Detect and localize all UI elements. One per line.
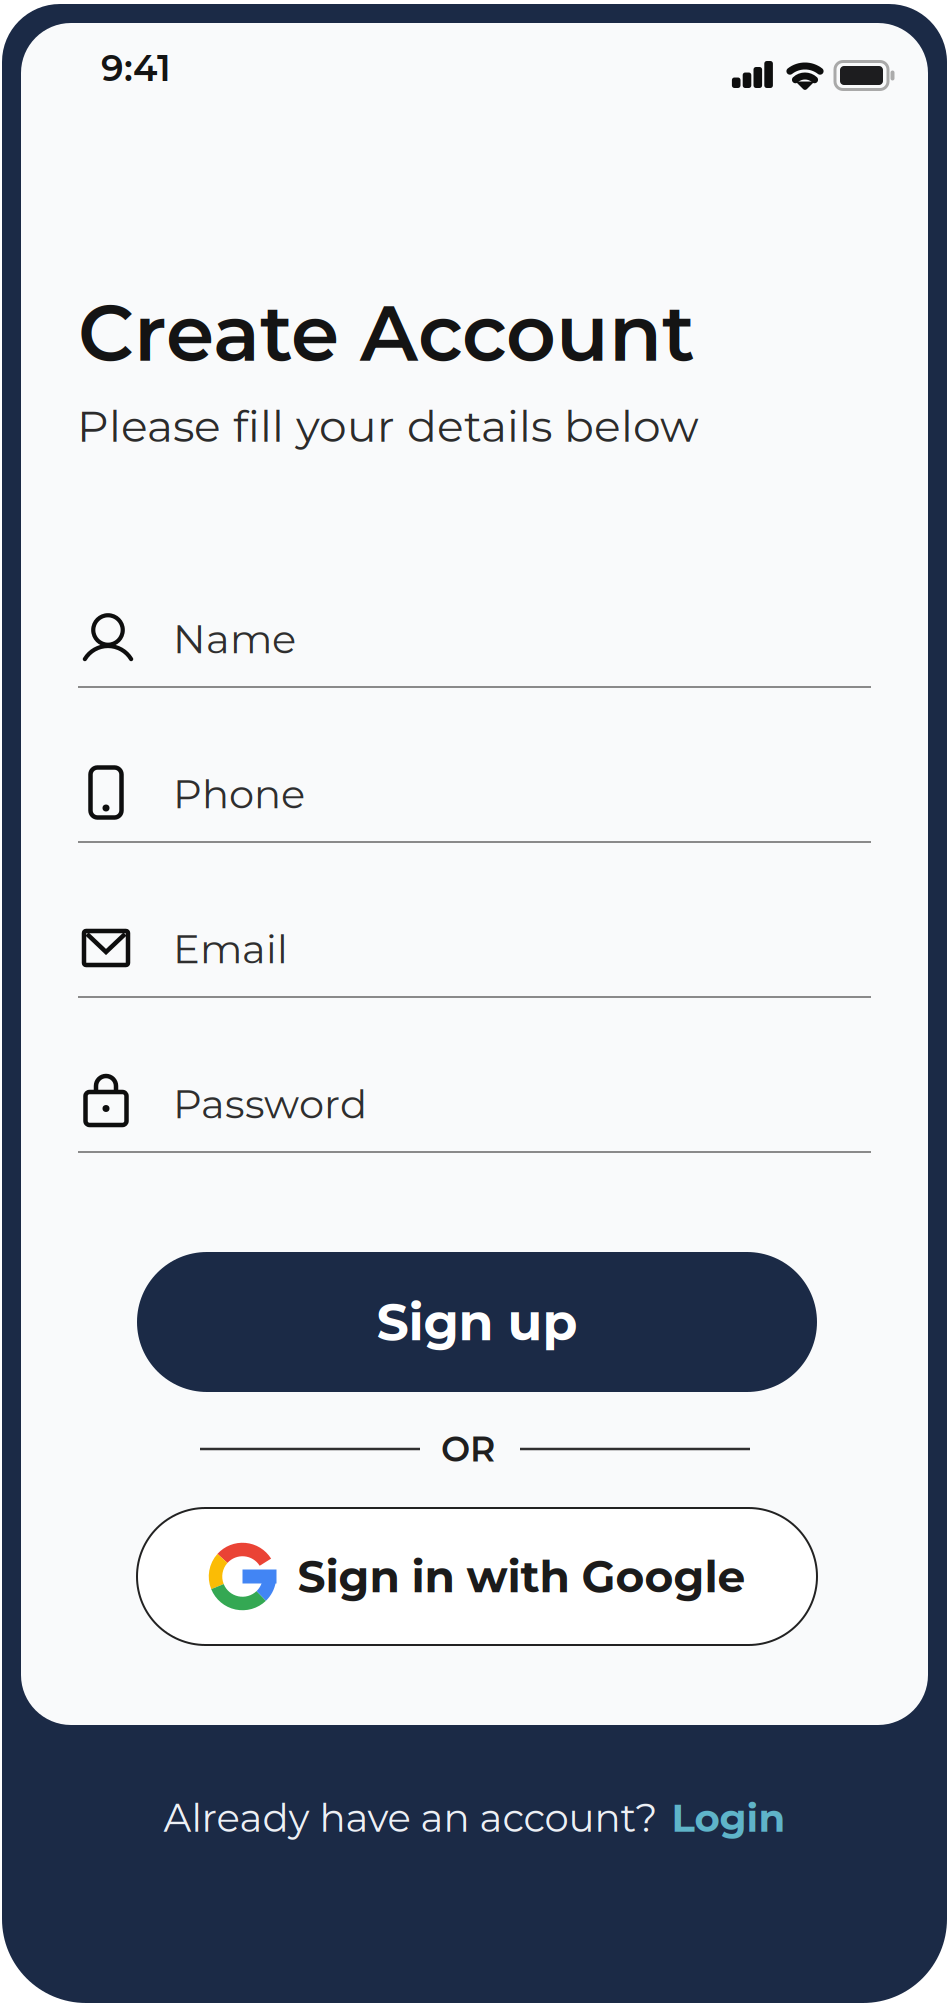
staticText: Already have an account? — [163, 1794, 657, 1841]
staticText: Password — [173, 1080, 367, 1128]
staticText: Sign up — [376, 1291, 577, 1353]
button[interactable]: Login — [671, 1794, 785, 1841]
staticText: 9:41 — [101, 46, 171, 90]
staticText: Email — [173, 925, 288, 973]
staticText: Sign in with Google — [297, 1550, 745, 1603]
staticText: Phone — [173, 770, 305, 818]
staticText: Create Account — [78, 286, 695, 380]
staticText: OR — [441, 1428, 495, 1470]
staticText: Login — [671, 1794, 785, 1841]
staticText: Please fill your details below — [77, 399, 699, 453]
button[interactable]: Sign up — [137, 1252, 817, 1392]
button[interactable]: Sign in with Google — [137, 1508, 817, 1645]
staticText: Name — [173, 615, 296, 663]
